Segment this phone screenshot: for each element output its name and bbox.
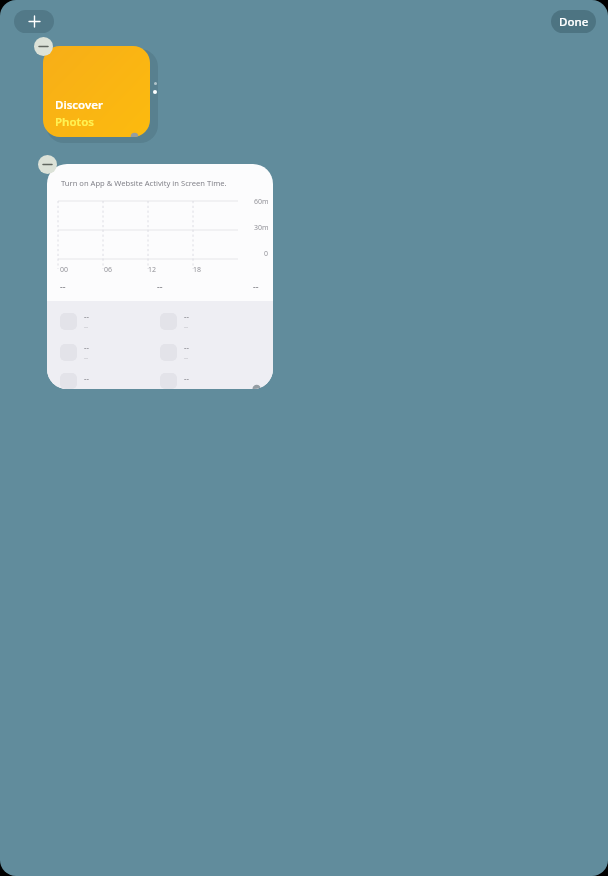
button[interactable]: -- [60, 311, 160, 331]
button[interactable]: -- [160, 373, 260, 389]
staticText: -- [184, 342, 189, 352]
button[interactable]: -- [160, 342, 260, 362]
button[interactable]: Discover [43, 46, 150, 137]
staticText: 06 [104, 265, 113, 275]
staticText: -- [157, 281, 163, 293]
staticText: Turn on App & Website Activity in Screen… [61, 178, 227, 188]
button[interactable]: Done [551, 10, 596, 33]
staticText: 18 [193, 265, 202, 275]
button[interactable]: Remove widget [38, 155, 57, 174]
button[interactable]: Turn on App & Website Activity in Screen… [47, 164, 273, 389]
staticText: 0 [264, 249, 269, 259]
staticText: -- [84, 342, 89, 352]
staticText: -- [84, 322, 89, 331]
staticText: -- [60, 281, 66, 293]
staticText: -- [84, 353, 89, 362]
button[interactable]: Remove widget [34, 37, 53, 56]
button[interactable]: Add widget [14, 10, 54, 33]
staticText: -- [184, 373, 189, 383]
button[interactable]: -- [160, 311, 260, 331]
button[interactable]: -- [60, 373, 160, 389]
staticText: -- [84, 311, 89, 321]
staticText: Done [559, 14, 589, 30]
staticText: Discover [55, 97, 103, 113]
button[interactable]: -- [60, 342, 160, 362]
staticText: Photos [55, 114, 94, 130]
staticText: 60m [254, 197, 269, 207]
staticText: -- [184, 311, 189, 321]
staticText: 30m [254, 223, 269, 233]
staticText: -- [253, 281, 259, 293]
staticText: -- [184, 353, 189, 362]
staticText: 12 [148, 265, 157, 275]
staticText: -- [184, 322, 189, 331]
staticText: 00 [60, 265, 69, 275]
staticText: -- [84, 373, 89, 383]
